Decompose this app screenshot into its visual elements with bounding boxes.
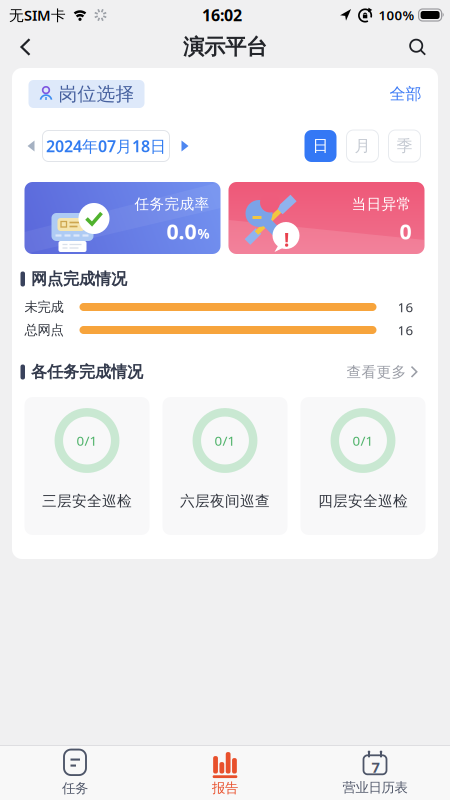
button[interactable]: 7	[300, 746, 450, 800]
staticText: 三层安全巡检	[42, 492, 132, 510]
staticText: %	[197, 225, 209, 242]
button[interactable]: Next day	[181, 140, 189, 152]
button[interactable]: Search	[409, 31, 450, 62]
button[interactable]: Back	[0, 31, 31, 63]
staticText: 0.0	[166, 217, 196, 245]
button[interactable]: 0/1	[162, 397, 287, 535]
button[interactable]: 月	[346, 130, 378, 162]
button[interactable]: 岗位选择	[28, 80, 144, 108]
button[interactable]: 报告	[150, 746, 300, 800]
button[interactable]: 2024年07月18日	[42, 130, 169, 161]
staticText: 网点完成情况	[31, 269, 127, 289]
staticText: 日	[312, 136, 328, 156]
staticText: 月	[354, 136, 370, 156]
staticText: 无SIM卡	[9, 5, 66, 25]
staticText: 六层夜间巡查	[180, 492, 270, 510]
staticText: 0	[399, 217, 411, 245]
staticText: 100%	[379, 6, 415, 24]
staticText: 全部	[389, 84, 421, 104]
staticText: 16	[397, 298, 413, 316]
staticText: 各任务完成情况	[31, 362, 143, 382]
button[interactable]: 日	[304, 130, 336, 162]
staticText: 四层安全巡检	[318, 492, 408, 510]
staticText: 16	[397, 321, 413, 339]
button[interactable]: 0/1	[300, 397, 425, 535]
staticText: 16:02	[202, 4, 242, 26]
staticText: 2024年07月18日	[46, 135, 166, 157]
button[interactable]: 任务	[0, 746, 150, 800]
button[interactable]: Previous day	[26, 140, 34, 152]
button[interactable]: 查看更多	[346, 363, 418, 381]
staticText: !	[284, 227, 289, 252]
button[interactable]: 季	[388, 130, 420, 162]
staticText: 季	[396, 136, 412, 156]
staticText: 未完成	[24, 299, 63, 315]
staticText: 岗位选择	[58, 82, 134, 105]
staticText: 任务完成率	[134, 195, 209, 213]
staticText: 0/1	[76, 432, 97, 449]
staticText: 0/1	[214, 432, 235, 449]
staticText: 当日异常	[351, 195, 411, 213]
staticText: 0/1	[352, 432, 373, 449]
staticText: 演示平台	[183, 34, 267, 60]
staticText: 报告	[212, 780, 238, 796]
staticText: 总网点	[24, 322, 63, 338]
staticText: 营业日历表	[342, 779, 407, 796]
staticText: 查看更多	[346, 363, 406, 381]
button[interactable]: 全部	[389, 84, 421, 104]
staticText: 7	[371, 757, 379, 777]
button[interactable]: 0/1	[24, 397, 149, 535]
staticText: 任务	[62, 780, 88, 796]
